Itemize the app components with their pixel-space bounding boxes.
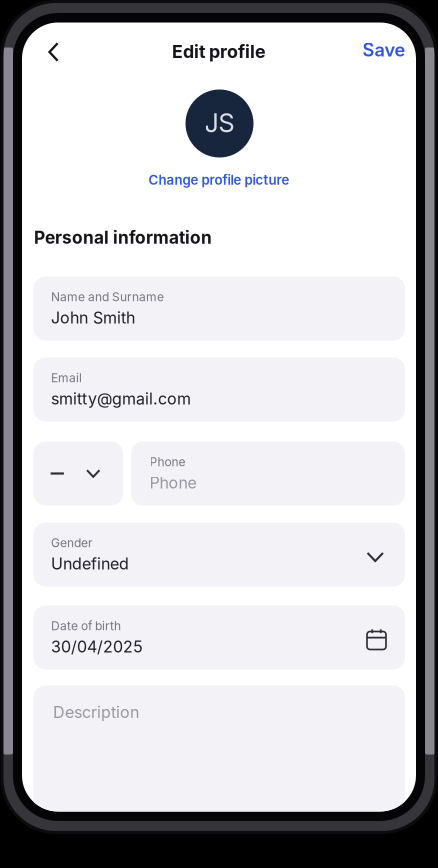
staticText: Email	[51, 371, 82, 385]
staticText: Phone	[149, 473, 196, 492]
button[interactable]: Name and Surname	[33, 276, 405, 340]
button[interactable]: Country code	[33, 441, 123, 505]
button[interactable]: Email	[33, 357, 405, 421]
button[interactable]: Change profile picture	[119, 167, 319, 193]
staticText: JS	[204, 108, 234, 138]
staticText: Name and Surname	[51, 290, 164, 304]
button[interactable]: Profile picture	[185, 89, 253, 157]
staticText: Phone	[149, 455, 185, 469]
staticText: Undefined	[51, 554, 129, 573]
button[interactable]: Save	[343, 31, 405, 69]
staticText: Change profile picture	[148, 172, 289, 188]
staticText: Gender	[51, 536, 93, 550]
button[interactable]: Back	[34, 33, 72, 71]
staticText: John Smith	[51, 308, 135, 327]
button[interactable]: Description	[33, 685, 405, 825]
staticText: Personal information	[34, 227, 212, 248]
button[interactable]: Phone	[131, 441, 405, 505]
staticText: Edit profile	[172, 41, 266, 62]
button[interactable]: Date of birth	[33, 605, 405, 669]
staticText: smitty@gmail.com	[51, 389, 191, 408]
staticText: Save	[362, 39, 405, 61]
staticText: Date of birth	[51, 619, 121, 633]
button[interactable]: Gender	[33, 522, 405, 586]
staticText: Description	[53, 702, 139, 722]
staticText: 30/04/2025	[51, 637, 143, 656]
